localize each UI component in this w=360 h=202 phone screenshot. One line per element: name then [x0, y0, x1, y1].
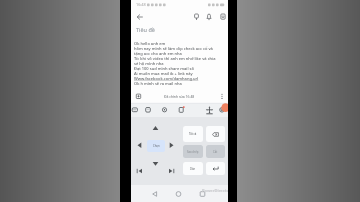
staticText: 16:48 — [136, 2, 146, 7]
staticText: Tiêu đề — [136, 26, 155, 33]
button[interactable]: Cắt — [206, 145, 225, 158]
staticText: Đã chỉnh sửa 16:48 — [164, 94, 195, 99]
button[interactable] — [206, 126, 225, 142]
staticText: Dán — [190, 167, 196, 171]
button[interactable]: Đã chỉnh sửa 16:48 — [131, 90, 228, 103]
staticText: Chọn — [153, 144, 160, 148]
button[interactable] — [206, 162, 225, 175]
button[interactable]: Dán — [183, 162, 203, 175]
staticText: PowerDirector — [202, 188, 228, 193]
button[interactable]: Tất cả — [183, 126, 203, 142]
staticText: Cắt — [213, 150, 218, 154]
button[interactable]: Chọn — [147, 140, 165, 152]
staticText: Sao chép — [187, 150, 199, 154]
staticText: Tất cả — [189, 132, 197, 136]
button[interactable]: Sao chép — [183, 145, 203, 158]
staticText: Ok hello anh em hôm nay mình sẽ làm clip… — [134, 41, 216, 86]
button[interactable] — [131, 11, 228, 24]
